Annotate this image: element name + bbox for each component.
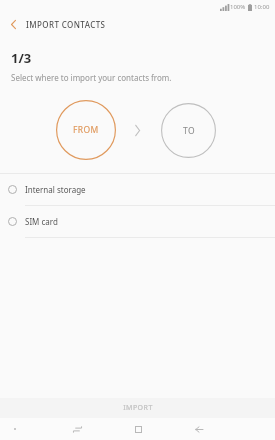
button[interactable]: FROM — [56, 100, 116, 160]
button[interactable]: SIM card — [0, 206, 275, 237]
button[interactable]: Back — [191, 421, 207, 437]
button[interactable]: Switch input method — [69, 421, 85, 437]
staticText: 1/3 — [11, 49, 32, 67]
button[interactable]: Back — [0, 13, 26, 35]
staticText: 10:00 — [254, 3, 270, 11]
staticText: IMPORT — [123, 403, 153, 413]
staticText: Select where to import your contacts fro… — [11, 72, 172, 83]
staticText: FROM — [73, 124, 99, 136]
button[interactable]: IMPORT — [0, 398, 275, 418]
staticText: 100% — [230, 3, 246, 11]
button[interactable]: TO — [161, 103, 216, 158]
button[interactable]: Internal storage — [0, 174, 275, 205]
staticText: IMPORT CONTACTS — [26, 19, 106, 30]
staticText: SIM card — [25, 216, 58, 227]
staticText: TO — [183, 125, 195, 137]
staticText: Internal storage — [25, 184, 86, 195]
button[interactable]: Recents — [130, 421, 146, 437]
button[interactable]: Menu — [8, 422, 22, 436]
